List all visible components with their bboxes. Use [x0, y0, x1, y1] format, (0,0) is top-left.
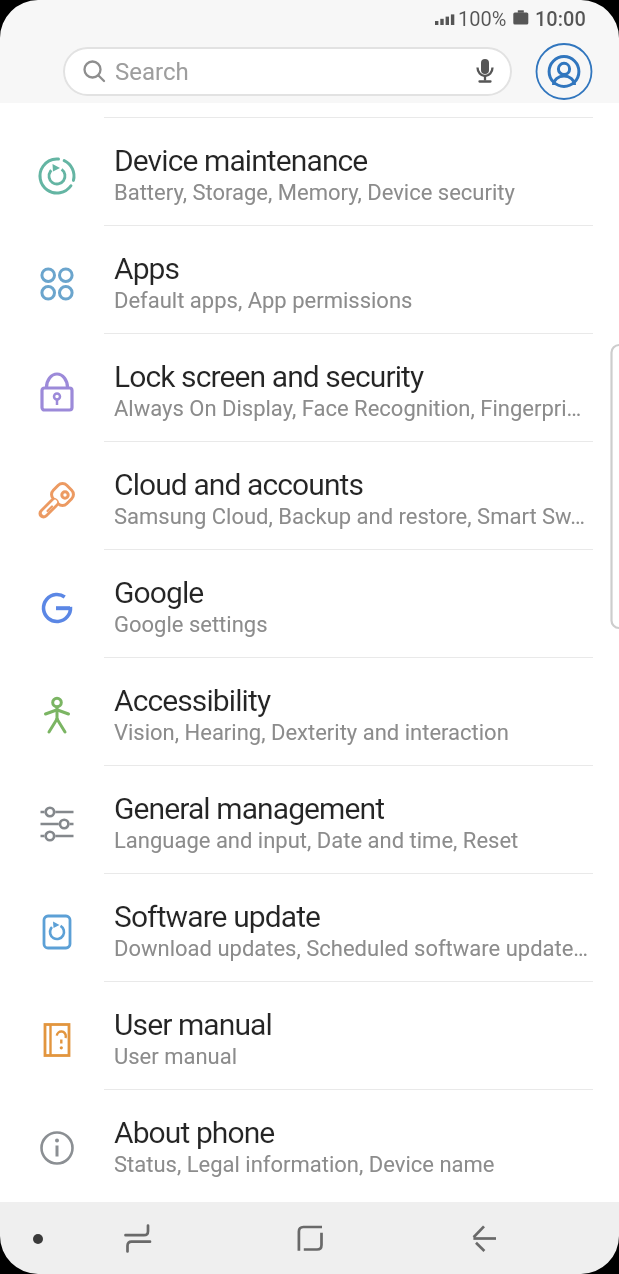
- staticText: Battery, Storage, Memory, Device securit…: [114, 180, 515, 206]
- staticText: Samsung Cloud, Backup and restore, Smart…: [114, 504, 586, 530]
- staticText: Device maintenance: [114, 143, 368, 178]
- staticText: Google: [114, 575, 204, 610]
- button[interactable]: Google: [0, 550, 619, 657]
- staticText: 10:00: [535, 7, 586, 30]
- staticText: User manual: [114, 1044, 238, 1070]
- staticText: Default apps, App permissions: [114, 288, 413, 314]
- staticText: Apps: [114, 251, 180, 286]
- button[interactable]: Lock screen and security: [0, 334, 619, 441]
- staticText: Accessibility: [114, 683, 271, 718]
- staticText: Software update: [114, 899, 321, 934]
- staticText: Language and input, Date and time, Reset: [114, 828, 519, 854]
- button[interactable]: [535, 43, 593, 101]
- button[interactable]: User manual: [0, 982, 619, 1089]
- button[interactable]: Accessibility: [0, 658, 619, 765]
- button[interactable]: General management: [0, 766, 619, 873]
- staticText: 100%: [458, 7, 507, 30]
- button[interactable]: [207, 1202, 413, 1274]
- staticText: Status, Legal information, Device name: [114, 1152, 495, 1178]
- staticText: Always On Display, Face Recognition, Fin…: [114, 396, 582, 422]
- staticText: Search: [115, 58, 189, 86]
- button[interactable]: Search: [63, 47, 512, 96]
- button[interactable]: Software update: [0, 874, 619, 981]
- staticText: Lock screen and security: [114, 359, 424, 394]
- staticText: User manual: [114, 1007, 272, 1042]
- staticText: General management: [114, 791, 385, 826]
- button[interactable]: [413, 1202, 619, 1274]
- staticText: Download updates, Scheduled software upd…: [114, 936, 589, 962]
- button[interactable]: Device maintenance: [0, 118, 619, 225]
- staticText: Google settings: [114, 612, 268, 638]
- button[interactable]: About phone: [0, 1090, 619, 1197]
- staticText: Vision, Hearing, Dexterity and interacti…: [114, 720, 509, 746]
- staticText: About phone: [114, 1115, 275, 1150]
- button[interactable]: [0, 1202, 207, 1274]
- button[interactable]: Apps: [0, 226, 619, 333]
- staticText: Cloud and accounts: [114, 467, 364, 502]
- button[interactable]: Cloud and accounts: [0, 442, 619, 549]
